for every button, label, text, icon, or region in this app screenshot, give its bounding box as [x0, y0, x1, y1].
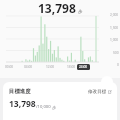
staticText: 目標進度 — [9, 88, 31, 95]
staticText: 18:00 — [67, 65, 76, 69]
staticText: 修改目標 — [88, 89, 107, 95]
staticText: 500 — [113, 51, 119, 55]
button[interactable]: 修改目標 — [88, 89, 112, 95]
staticText: 2,000 — [110, 13, 119, 17]
staticText: 13,798 — [9, 98, 36, 110]
staticText: 1,500 — [110, 26, 119, 30]
staticText: 步 — [52, 105, 56, 110]
staticText: 13,798 — [38, 0, 76, 16]
staticText: 00:00 — [5, 65, 14, 69]
staticText: /10,000 — [36, 104, 51, 110]
staticText: 04:00 — [24, 65, 33, 69]
staticText: 24:00 — [79, 65, 88, 69]
button[interactable]: 目標進度 — [3, 82, 117, 120]
staticText: 12:00 — [46, 65, 55, 69]
staticText: 0 — [117, 63, 119, 67]
staticText: 1,000 — [110, 38, 119, 42]
staticText: 步 — [78, 9, 83, 15]
